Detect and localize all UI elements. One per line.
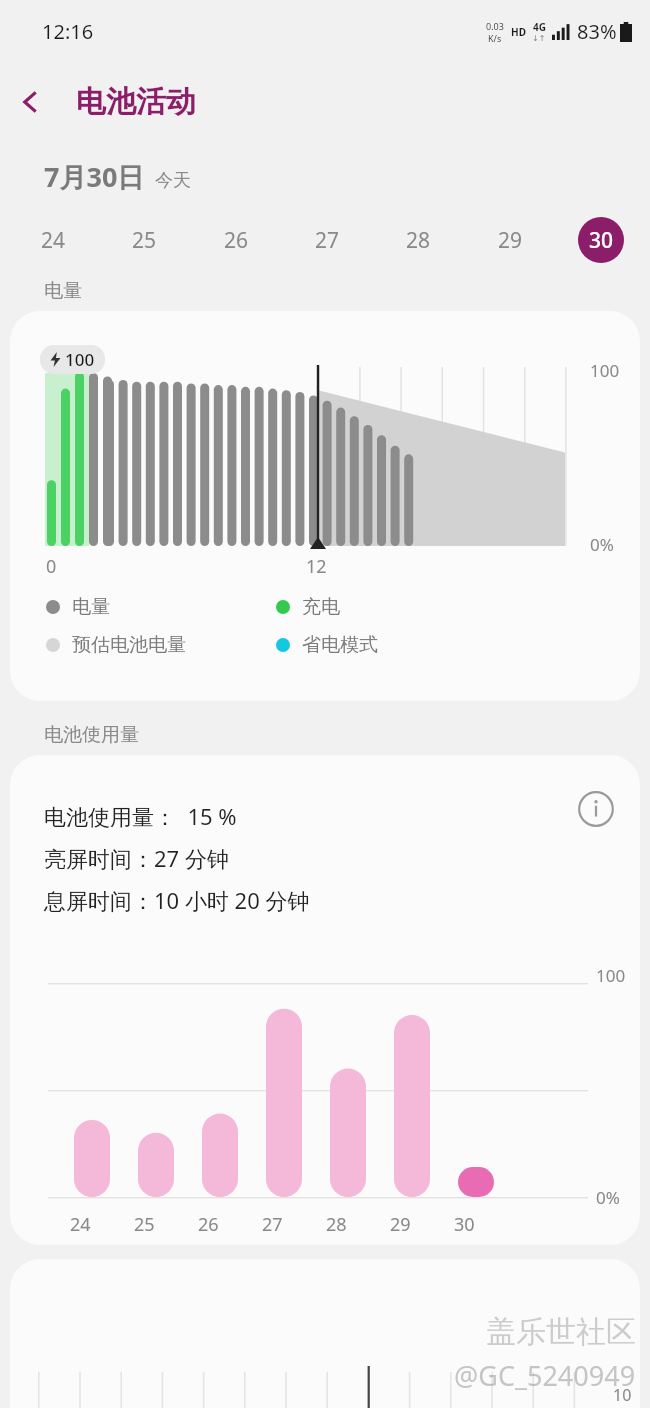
staticText: 29	[390, 1212, 411, 1237]
staticText: 30	[589, 226, 614, 255]
staticText: 充电	[302, 595, 340, 619]
staticText: 省电模式	[302, 633, 378, 657]
staticText: 26	[198, 1212, 219, 1237]
button[interactable]: 电量	[46, 595, 276, 619]
staticText: 0	[46, 554, 57, 579]
staticText: HD	[511, 25, 526, 39]
button[interactable]: 27	[304, 217, 350, 263]
staticText: 100	[590, 359, 620, 382]
staticText: 29	[498, 226, 523, 255]
staticText: 4G	[533, 20, 546, 34]
staticText: 电池使用量	[44, 723, 139, 747]
staticText: 7月30日	[44, 158, 145, 195]
staticText: ↓↑	[532, 34, 546, 43]
staticText: 100	[65, 348, 95, 371]
staticText: 电量	[44, 279, 82, 303]
button[interactable]: 26	[213, 217, 259, 263]
staticText: 83%	[577, 18, 617, 45]
staticText: 27	[262, 1212, 283, 1237]
staticText: 电量	[72, 595, 110, 619]
staticText: 电池活动	[76, 83, 196, 121]
staticText: 28	[326, 1212, 347, 1237]
staticText: 息屏时间：10 小时 20 分钟	[44, 885, 310, 915]
staticText: K/s	[488, 32, 502, 44]
staticText: 盖乐世社区	[486, 1313, 636, 1351]
button[interactable]: 24	[30, 217, 76, 263]
staticText: 电池使用量： 15 %	[44, 801, 237, 831]
staticText: 12:16	[42, 18, 94, 45]
staticText: 26	[224, 226, 249, 255]
button[interactable]: 30	[578, 217, 624, 263]
button[interactable]: 电池使用量： 15 %	[10, 755, 640, 1245]
button[interactable]: Info	[574, 787, 618, 831]
staticText: 25	[132, 226, 157, 255]
button[interactable]: 28	[395, 217, 441, 263]
staticText: 0%	[596, 1186, 620, 1209]
button[interactable]: 100	[10, 311, 640, 701]
staticText: 27	[315, 226, 340, 255]
button[interactable]: 省电模式	[276, 633, 378, 657]
staticText: 10	[613, 1384, 632, 1406]
button[interactable]: 充电	[276, 595, 340, 619]
staticText: 25	[134, 1212, 155, 1237]
staticText: 24	[70, 1212, 91, 1237]
staticText: 30	[454, 1212, 475, 1237]
staticText: 预估电池电量	[72, 633, 186, 657]
staticText: 24	[41, 226, 66, 255]
staticText: 今天	[155, 169, 191, 192]
staticText: @GC_5240949	[454, 1357, 636, 1394]
staticText: 亮屏时间：27 分钟	[44, 843, 229, 873]
button[interactable]: 25	[121, 217, 167, 263]
button[interactable]: 29	[487, 217, 533, 263]
staticText: 0.03	[486, 20, 504, 32]
staticText: 28	[406, 226, 431, 255]
button[interactable]: Back	[0, 71, 62, 133]
button[interactable]: 预估电池电量	[46, 633, 276, 657]
button[interactable]: 10	[10, 1259, 640, 1408]
staticText: 0%	[590, 533, 614, 556]
staticText: 12	[306, 554, 327, 579]
staticText: 100	[596, 964, 626, 987]
